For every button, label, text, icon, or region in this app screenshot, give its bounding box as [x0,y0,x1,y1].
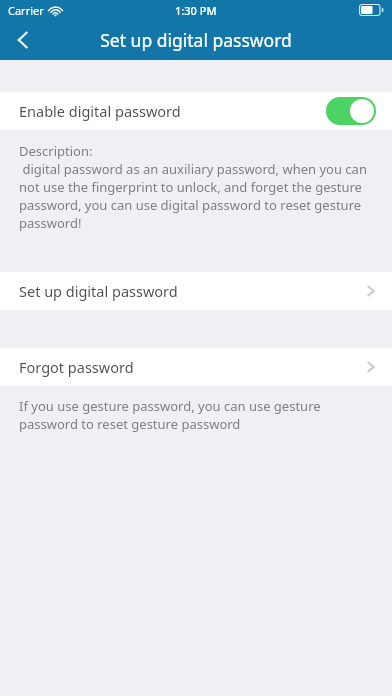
button[interactable]: Forgot password [0,348,392,386]
button[interactable]: Back [0,17,46,63]
staticText: Set up digital password [0,28,392,52]
button[interactable]: Enable digital password toggle [326,97,376,125]
staticText: 1:30 PM [175,3,217,18]
staticText: Description: [19,142,93,160]
staticText: Forgot password [19,357,134,377]
staticText: Enable digital password [19,101,181,121]
button[interactable]: Set up digital password [0,272,392,310]
button[interactable]: Enable digital password [0,92,392,130]
staticText: digital password as an auxiliary passwor… [19,160,373,232]
staticText: If you use gesture password, you can use… [19,397,373,433]
staticText: Carrier [8,3,44,18]
staticText: Set up digital password [19,281,178,301]
